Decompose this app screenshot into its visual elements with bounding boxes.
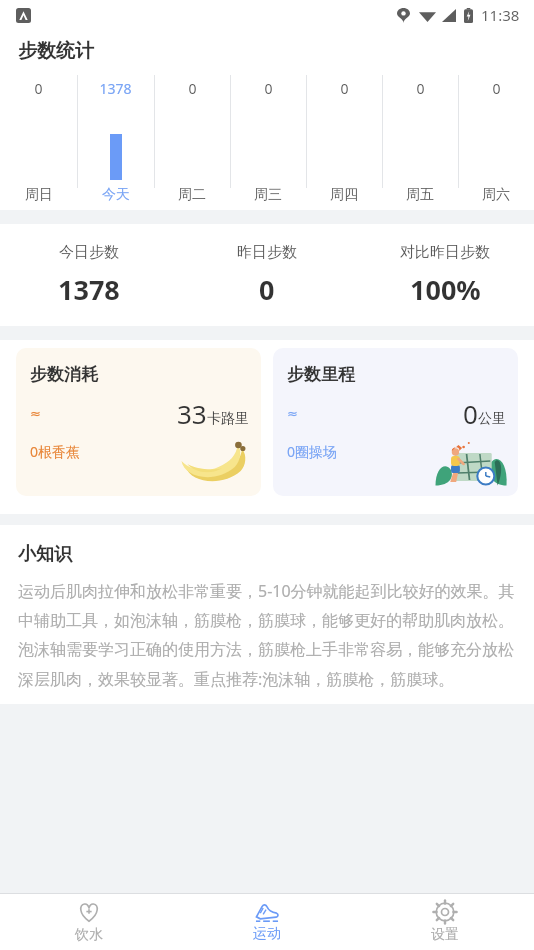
staticText: 运动 [253,925,281,943]
staticText: 卡路里 [207,410,249,428]
button[interactable]: 步数里程 [273,348,518,496]
staticText: 0 [492,79,501,98]
staticText: 11:38 [481,5,520,25]
staticText: 运动后肌肉拉伸和放松非常重要，5-10分钟就能起到比较好的效果。其中辅助工具，如… [18,580,516,690]
staticText: 0 [416,79,425,98]
staticText: ≈ [287,406,298,421]
staticText: 昨日步数 [237,243,297,262]
staticText: 设置 [431,926,459,944]
button[interactable]: 今日步数 [0,243,178,308]
staticText: 周三 [254,186,282,204]
staticText: 小知识 [18,543,72,566]
button[interactable]: 步数消耗 [16,348,261,496]
staticText: 周四 [330,186,358,204]
staticText: 0 [34,79,43,98]
staticText: 0 [463,396,478,431]
staticText: 饮水 [75,926,103,944]
staticText: 0 [340,79,349,98]
staticText: ≈ [30,406,41,421]
staticText: 步数统计 [18,39,94,63]
staticText: 周六 [482,186,510,204]
button[interactable]: 昨日步数 [178,243,356,308]
staticText: 0 [264,79,273,98]
staticText: 公里 [478,410,506,428]
staticText: 0圈操场 [287,442,338,461]
staticText: 33 [177,396,207,431]
button[interactable]: 对比昨日步数 [356,243,534,308]
staticText: 1378 [58,271,120,308]
staticText: 步数消耗 [30,364,98,385]
staticText: 0 [188,79,197,98]
staticText: 0 [259,271,275,308]
staticText: 100% [410,271,481,308]
staticText: 周日 [25,186,53,204]
staticText: 今天 [102,186,130,204]
button[interactable]: 饮水 [0,894,178,950]
button[interactable]: 运动 [178,894,356,950]
staticText: 今日步数 [59,243,119,262]
staticText: 对比昨日步数 [400,243,490,262]
staticText: 周五 [406,186,434,204]
staticText: 周二 [178,186,206,204]
staticText: 0根香蕉 [30,442,81,461]
staticText: 1378 [99,79,132,98]
button[interactable]: 设置 [356,894,534,950]
staticText: 步数里程 [287,364,355,385]
